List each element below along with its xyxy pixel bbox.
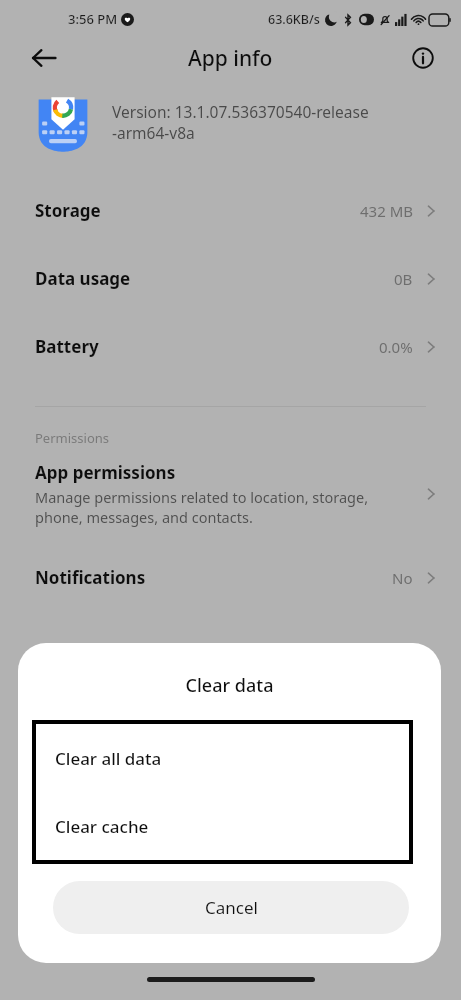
staticText: Storage — [35, 199, 101, 222]
staticText: Battery — [35, 335, 99, 358]
staticText: Version: 13.1.07.536370540-release -arm6… — [112, 101, 369, 144]
staticText: 0.0% — [379, 337, 413, 357]
staticText: Clear all data — [55, 747, 162, 770]
button[interactable]: Cancel — [53, 881, 409, 934]
button[interactable]: Storage — [0, 176, 461, 244]
staticText: 432 MB — [360, 201, 413, 221]
staticText: Permissions — [35, 429, 110, 447]
staticText: Manage permissions related to location, … — [35, 487, 369, 527]
button[interactable]: Data usage — [0, 244, 461, 312]
staticText: 0B — [394, 269, 413, 289]
staticText: Clear cache — [55, 815, 149, 838]
button[interactable]: Notifications — [0, 543, 461, 611]
staticText: No — [392, 568, 413, 588]
button[interactable]: App permissions — [0, 457, 461, 531]
staticText: Cancel — [205, 896, 258, 919]
staticText: Data usage — [35, 267, 131, 290]
staticText: 3:56 PM — [68, 10, 118, 28]
button[interactable]: Clear all data — [36, 724, 409, 792]
button[interactable]: Clear cache — [36, 792, 409, 860]
staticText: Clear data — [18, 673, 441, 698]
staticText: 63.6KB/s — [268, 11, 320, 28]
button[interactable]: App details — [401, 36, 445, 80]
button[interactable]: Back — [20, 34, 68, 82]
staticText: App info — [188, 44, 273, 73]
button[interactable]: Battery — [0, 312, 461, 380]
staticText: App permissions — [35, 461, 176, 484]
staticText: Notifications — [35, 566, 146, 589]
